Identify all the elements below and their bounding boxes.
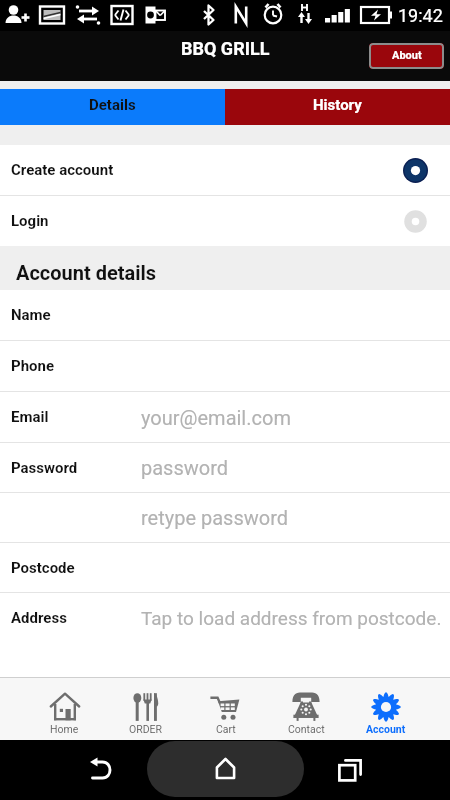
staticText: Phone (11, 357, 55, 375)
staticText: Home (50, 723, 79, 735)
staticText: Details (89, 96, 136, 114)
staticText: About (392, 49, 422, 62)
button[interactable]: retype password (0, 493, 450, 542)
button[interactable]: Recent apps (328, 748, 372, 792)
staticText: your@email.com (141, 406, 291, 429)
staticText: Account (366, 723, 406, 735)
button[interactable]: Postcode (0, 543, 450, 592)
staticText: Name (11, 306, 51, 324)
button[interactable]: Create account (0, 145, 450, 195)
staticText: Contact (288, 723, 325, 735)
button[interactable]: History (225, 89, 450, 125)
staticText: ORDER (129, 723, 163, 735)
staticText: Password (11, 459, 78, 477)
staticText: Login (11, 212, 49, 230)
staticText: Postcode (11, 559, 75, 577)
staticText: Cart (216, 723, 236, 735)
staticText: Account details (16, 261, 157, 284)
button[interactable]: Password (0, 443, 450, 492)
button[interactable]: Account (346, 678, 426, 740)
staticText: 19:42 (398, 5, 443, 26)
staticText: Email (11, 408, 49, 426)
staticText: Address (11, 609, 67, 627)
button[interactable]: Address (0, 593, 450, 643)
button[interactable]: About (369, 43, 444, 69)
staticText: retype password (141, 506, 289, 529)
button[interactable]: ORDER (105, 678, 186, 740)
staticText: History (313, 96, 362, 114)
button[interactable]: Back (78, 748, 122, 792)
button[interactable]: Home (24, 678, 105, 740)
staticText: Create account (11, 161, 114, 179)
staticText: password (141, 456, 229, 479)
button[interactable]: Home (147, 741, 304, 797)
staticText: Tap to load address from postcode. (141, 607, 442, 629)
button[interactable]: Login (0, 196, 450, 246)
staticText: BBQ GRILL (181, 38, 270, 59)
button[interactable]: Name (0, 290, 450, 340)
button[interactable]: Phone (0, 341, 450, 391)
button[interactable]: Cart (186, 678, 266, 740)
button[interactable]: Contact (266, 678, 346, 740)
button[interactable]: Details (0, 89, 225, 125)
button[interactable]: Email (0, 392, 450, 442)
